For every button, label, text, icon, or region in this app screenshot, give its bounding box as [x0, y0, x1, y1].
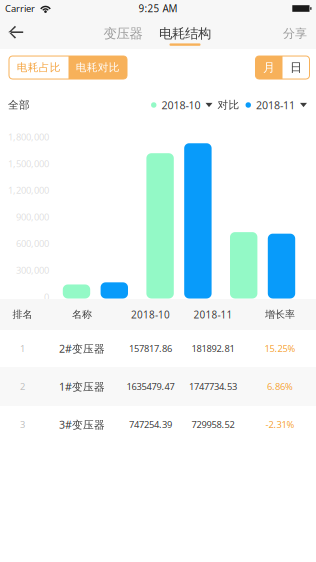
staticText: 日 — [290, 60, 302, 75]
staticText: 电耗对比 — [76, 61, 120, 74]
staticText: 电耗占比 — [17, 61, 61, 74]
staticText: 2018-10 — [131, 308, 170, 321]
button[interactable]: 2018-10 — [156, 98, 212, 112]
staticText: 3 — [20, 418, 25, 431]
button[interactable]: Back — [0, 17, 36, 49]
staticText: 15.25% — [264, 342, 295, 355]
staticText: 月 — [263, 60, 275, 75]
staticText: 分享 — [283, 26, 307, 41]
staticText: 1 — [20, 342, 25, 355]
button[interactable]: 电耗占比 — [9, 56, 68, 79]
staticText: 1635479.47 — [126, 380, 174, 393]
button[interactable]: 变压器 — [0, 17, 150, 45]
staticText: 2 — [20, 380, 25, 393]
staticText: 变压器 — [103, 25, 142, 42]
staticText: 729958.52 — [191, 418, 234, 431]
staticText: 对比 — [217, 98, 239, 112]
button[interactable]: 分享 — [0, 17, 316, 45]
staticText: 1,500,000 — [8, 157, 49, 170]
staticText: 0 — [44, 290, 49, 303]
staticText: 1#变压器 — [59, 379, 105, 394]
button[interactable]: 电耗结构 — [0, 17, 218, 49]
staticText: 2018-10 — [161, 98, 200, 112]
staticText: 2#变压器 — [59, 341, 105, 356]
staticText: 2018-11 — [256, 98, 295, 112]
staticText: 300,000 — [16, 264, 49, 276]
staticText: 1,800,000 — [8, 130, 49, 143]
staticText: 9:25 AM — [138, 2, 177, 15]
staticText: 600,000 — [16, 237, 49, 250]
staticText: 1,200,000 — [8, 184, 49, 196]
staticText: -2.31% — [265, 418, 294, 431]
button[interactable]: 2018-11 — [251, 98, 307, 112]
staticText: 1747734.53 — [189, 380, 237, 393]
staticText: 157817.86 — [129, 342, 172, 355]
staticText: 900,000 — [16, 210, 49, 223]
button[interactable]: 日 — [282, 56, 309, 79]
staticText: 3#变压器 — [59, 417, 105, 432]
staticText: 2018-11 — [193, 308, 232, 321]
staticText: 名称 — [72, 308, 92, 321]
staticText: 增长率 — [265, 308, 295, 321]
staticText: 6.86% — [267, 380, 293, 393]
staticText: 排名 — [12, 308, 32, 321]
staticText: 747254.39 — [129, 418, 172, 431]
staticText: 全部 — [8, 98, 30, 112]
staticText: 电耗结构 — [159, 25, 211, 42]
staticText: Carrier — [5, 2, 35, 15]
button[interactable]: 月 — [255, 56, 282, 79]
staticText: 181892.81 — [191, 342, 234, 355]
button[interactable]: 电耗对比 — [68, 56, 127, 79]
